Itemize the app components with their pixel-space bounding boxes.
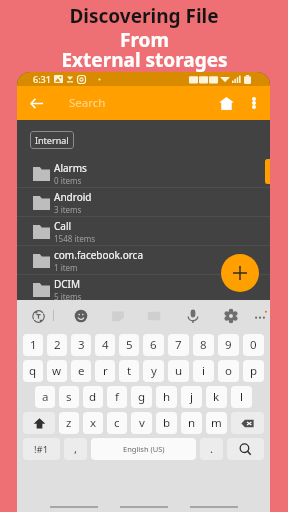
staticText: Call (54, 219, 72, 233)
button[interactable]: 9 (218, 334, 239, 356)
button[interactable]: k (206, 386, 227, 408)
button[interactable]: Internal (30, 131, 74, 149)
staticText: 0 (250, 337, 257, 353)
button[interactable]: More (250, 306, 270, 326)
button[interactable]: s (59, 386, 79, 408)
button[interactable]: 7 (168, 334, 189, 356)
button[interactable]: GIF (144, 306, 164, 326)
button[interactable]: English (US) (91, 438, 196, 460)
button[interactable]: u (168, 360, 189, 382)
button[interactable]: 8 (193, 334, 214, 356)
staticText: e (78, 363, 85, 379)
button[interactable]: Home (120, 498, 168, 512)
staticText: English (US) (123, 444, 165, 454)
button[interactable]: n (181, 412, 202, 434)
button[interactable]: . (200, 438, 223, 460)
button[interactable]: 1 (23, 334, 43, 356)
staticText: d (89, 389, 97, 405)
staticText: z (66, 415, 72, 431)
button[interactable]: y (143, 360, 164, 382)
staticText: 9 (225, 337, 232, 353)
staticText: Alarms (54, 161, 87, 175)
staticText: 1 (30, 337, 37, 353)
button[interactable]: b (156, 412, 177, 434)
staticText: b (163, 415, 171, 431)
button[interactable]: d (83, 386, 103, 408)
staticText: 8 (200, 337, 207, 353)
button[interactable]: 5 (119, 334, 139, 356)
button[interactable]: Android (17, 188, 270, 217)
button[interactable]: Call (17, 217, 270, 246)
button[interactable]: com.facebook.orca (17, 246, 270, 275)
button[interactable]: r (95, 360, 115, 382)
button[interactable]: 4 (95, 334, 115, 356)
staticText: . (210, 441, 214, 457)
staticText: External storages (61, 47, 228, 73)
staticText: From (120, 27, 169, 53)
button[interactable]: 2 (47, 334, 67, 356)
button[interactable]: i (193, 360, 214, 382)
button[interactable]: Backspace (231, 412, 264, 434)
button[interactable]: x (83, 412, 103, 434)
button[interactable]: m (206, 412, 227, 434)
staticText: Internal (35, 134, 69, 146)
button[interactable]: Stickers (108, 306, 128, 326)
button[interactable]: Add (221, 254, 259, 292)
button[interactable]: Search (227, 438, 264, 460)
staticText: DCIM (54, 277, 81, 291)
button[interactable]: Recents (50, 498, 98, 512)
button[interactable]: p (243, 360, 264, 382)
button[interactable]: Home (215, 92, 237, 114)
staticText: 4 (102, 337, 109, 353)
staticText: , (74, 441, 78, 457)
staticText: y (151, 363, 157, 379)
button[interactable]: Settings (221, 306, 241, 326)
button[interactable]: t (119, 360, 139, 382)
staticText: l (240, 389, 243, 405)
staticText: v (139, 415, 145, 431)
staticText: q (29, 363, 37, 379)
staticText: Discovering File (69, 3, 219, 29)
button[interactable]: e (71, 360, 91, 382)
button[interactable]: Emoji (71, 306, 91, 326)
button[interactable]: o (218, 360, 239, 382)
staticText: c (114, 415, 120, 431)
button[interactable]: Voice input (183, 306, 203, 326)
button[interactable]: v (131, 412, 152, 434)
staticText: Search (69, 95, 106, 111)
button[interactable]: z (59, 412, 79, 434)
button[interactable]: Back (190, 498, 238, 512)
staticText: 6 (150, 337, 157, 353)
button[interactable]: a (35, 386, 55, 408)
button[interactable]: w (47, 360, 67, 382)
staticText: 2 (54, 337, 61, 353)
button[interactable]: 3 (71, 334, 91, 356)
staticText: !#1 (34, 443, 49, 456)
staticText: 1548 items (54, 233, 96, 244)
button[interactable]: Shift (23, 412, 55, 434)
button[interactable]: h (156, 386, 177, 408)
button[interactable]: l (231, 386, 252, 408)
button[interactable]: j (181, 386, 202, 408)
button[interactable]: Translate (28, 306, 48, 326)
button[interactable]: g (131, 386, 152, 408)
button[interactable]: 6 (143, 334, 164, 356)
staticText: 1 item (54, 262, 78, 273)
button[interactable]: More options (244, 93, 264, 113)
button[interactable]: 0 (243, 334, 264, 356)
staticText: o (225, 363, 232, 379)
staticText: p (250, 363, 258, 379)
button[interactable]: c (107, 412, 127, 434)
staticText: m (211, 415, 222, 431)
staticText: 7 (175, 337, 182, 353)
staticText: g (138, 389, 146, 405)
staticText: h (163, 389, 171, 405)
staticText: 0 items (54, 175, 82, 186)
button[interactable]: q (23, 360, 43, 382)
button[interactable]: f (107, 386, 127, 408)
button[interactable]: !#1 (23, 438, 60, 460)
button[interactable]: Back (25, 92, 47, 114)
button[interactable]: , (64, 438, 87, 460)
button[interactable]: Alarms (17, 159, 270, 188)
button[interactable]: DCIM (17, 275, 270, 304)
